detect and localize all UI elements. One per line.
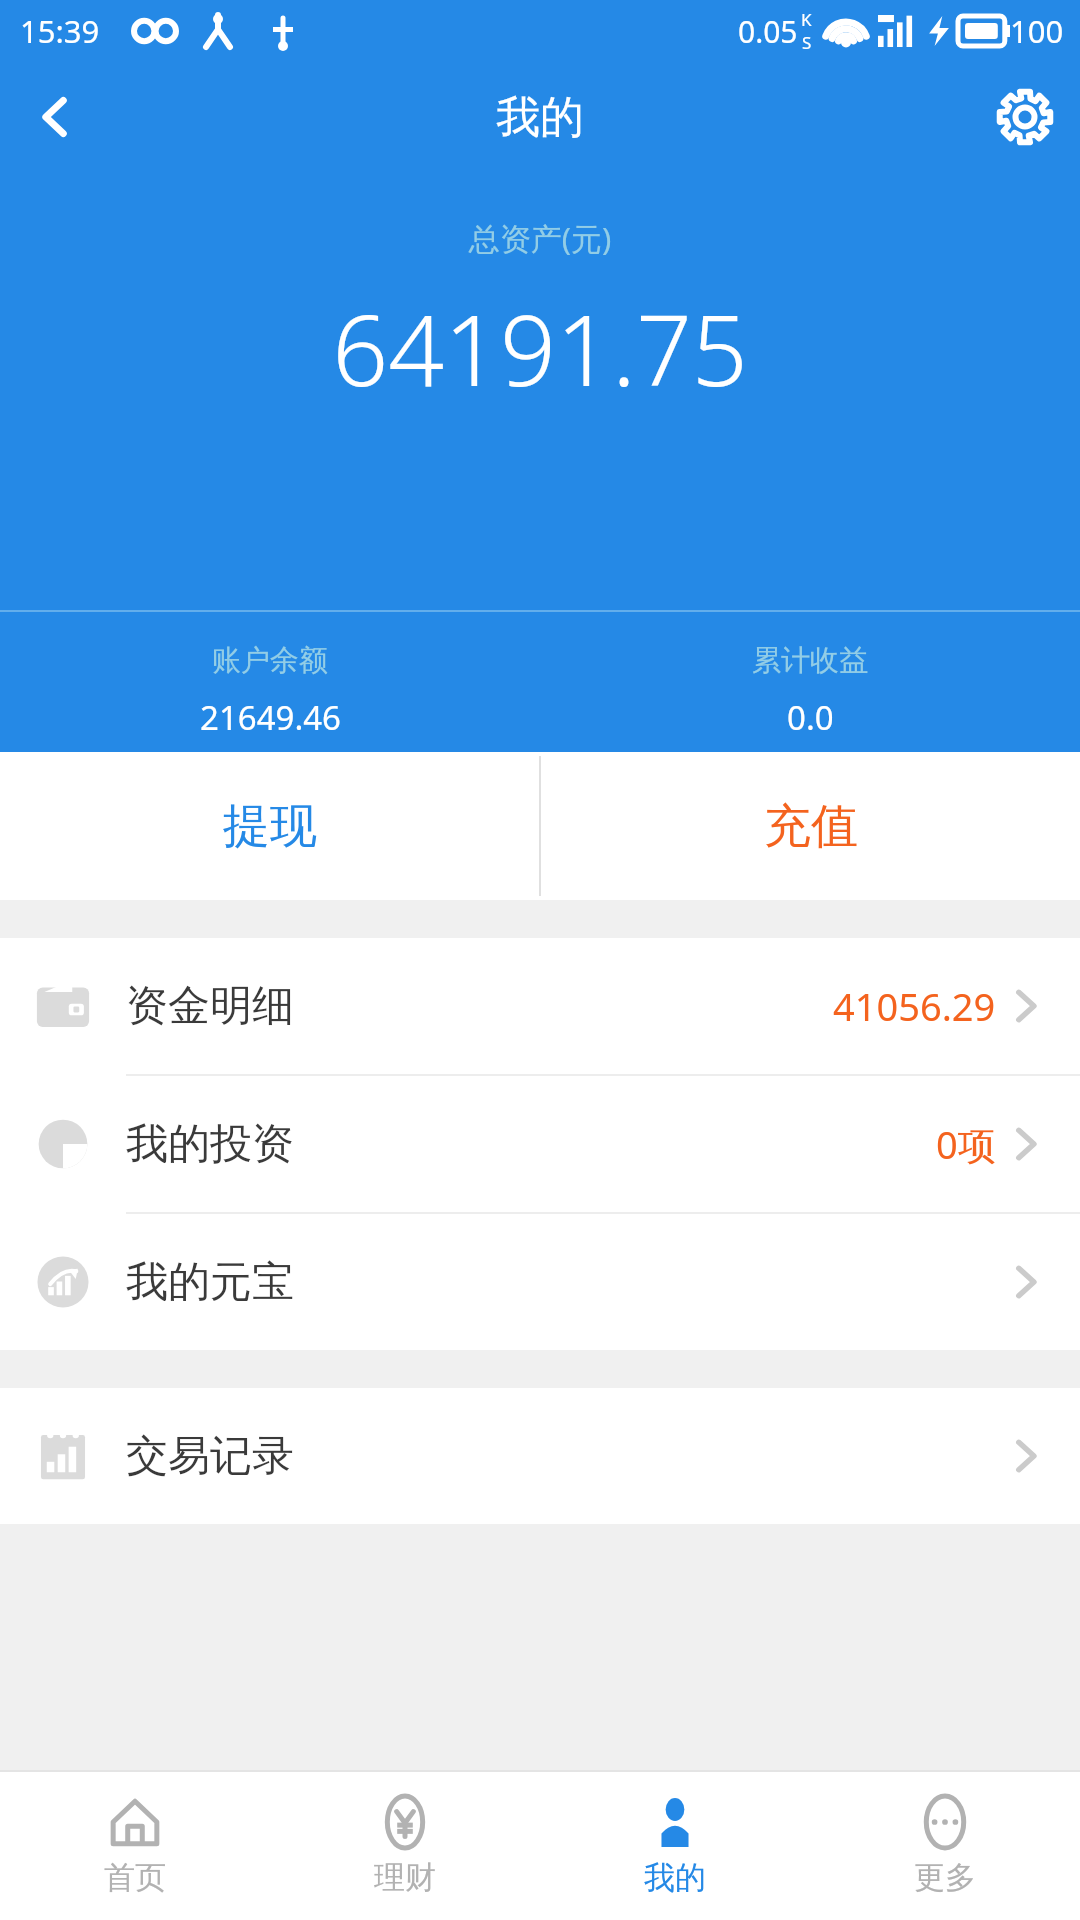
button[interactable]: 提现	[0, 752, 539, 900]
staticText: 资金明细	[126, 980, 294, 1033]
staticText: 更多	[914, 1858, 976, 1897]
staticText: 理财	[374, 1858, 436, 1897]
staticText: 0.0	[787, 695, 834, 740]
staticText: 0.05	[738, 11, 798, 52]
staticText: K	[801, 8, 812, 31]
staticText: 64191.75	[0, 281, 1080, 414]
staticText: 21649.46	[200, 695, 341, 740]
staticText: 100	[1010, 10, 1064, 52]
button[interactable]: 首页	[0, 1772, 270, 1920]
button[interactable]: 资金明细	[0, 938, 1080, 1074]
button[interactable]: 交易记录	[0, 1388, 1080, 1524]
button[interactable]: Back	[0, 62, 110, 172]
staticText: 0项	[936, 1118, 996, 1170]
staticText: 交易记录	[126, 1430, 294, 1483]
staticText: 总资产(元)	[0, 217, 1080, 259]
button[interactable]: 我的投资	[0, 1076, 1080, 1212]
staticText: S	[802, 31, 812, 54]
button[interactable]: 我的元宝	[0, 1214, 1080, 1350]
button[interactable]: 充值	[541, 752, 1080, 900]
staticText: 我的	[496, 90, 584, 145]
staticText: 我的投资	[126, 1118, 294, 1171]
staticText: 充值	[764, 797, 858, 856]
staticText: 首页	[104, 1858, 166, 1897]
staticText: 累计收益	[752, 642, 868, 679]
staticText: 我的元宝	[126, 1256, 294, 1309]
button[interactable]: 更多	[810, 1772, 1080, 1920]
staticText: 我的	[644, 1858, 706, 1897]
button[interactable]: 理财	[270, 1772, 540, 1920]
button[interactable]: 我的	[540, 1772, 810, 1920]
staticText: 41056.29	[833, 980, 996, 1032]
button[interactable]: Settings	[970, 62, 1080, 172]
staticText: 提现	[223, 797, 317, 856]
staticText: 15:39	[20, 10, 100, 52]
staticText: 账户余额	[212, 642, 328, 679]
